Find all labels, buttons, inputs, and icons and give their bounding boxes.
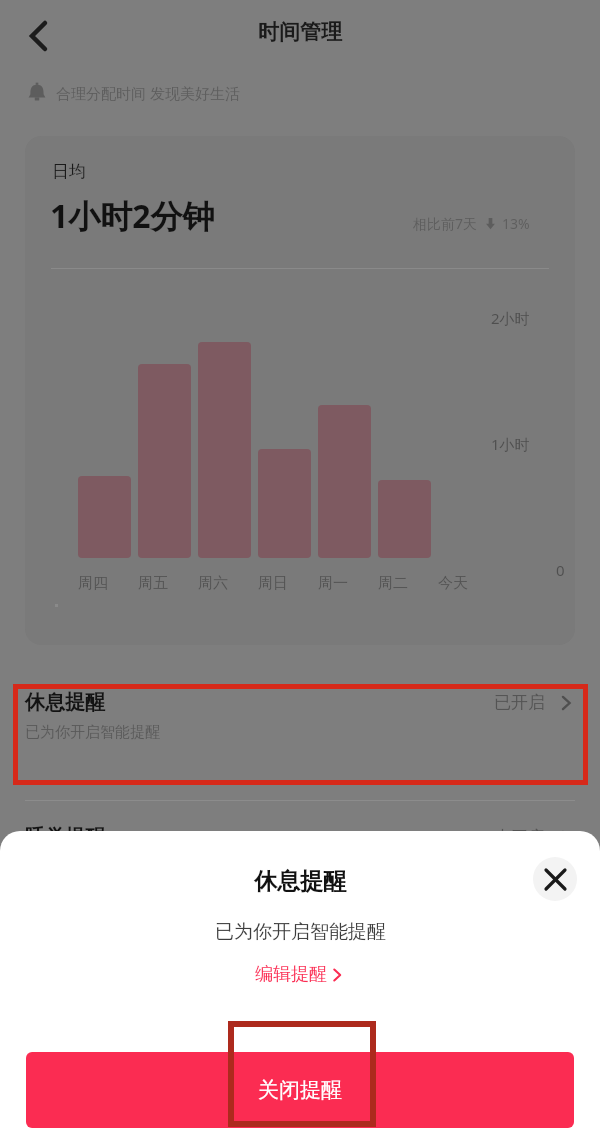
- staticText: 日均: [52, 161, 86, 182]
- button[interactable]: 睡觉提醒: [25, 825, 575, 850]
- staticText: 相比前7天: [413, 214, 478, 233]
- staticText: 未开启: [494, 827, 545, 848]
- staticText: 已开启: [494, 692, 545, 713]
- button[interactable]: 休息提醒: [25, 690, 575, 742]
- button[interactable]: 关闭提醒: [26, 1052, 574, 1128]
- staticText: 关闭提醒: [258, 1077, 342, 1103]
- staticText: 编辑提醒: [255, 963, 327, 986]
- staticText: 周二: [378, 574, 408, 593]
- button[interactable]: 编辑提醒: [255, 963, 345, 986]
- staticText: 已为你开启智能提醒: [25, 723, 160, 742]
- staticText: 睡觉提醒: [25, 825, 494, 850]
- staticText: 周日: [258, 574, 288, 593]
- staticText: 休息提醒: [254, 867, 346, 896]
- staticText: 周四: [78, 574, 108, 593]
- button[interactable]: Back: [12, 10, 64, 62]
- staticText: 1小时: [491, 434, 530, 454]
- staticText: 0: [556, 560, 565, 580]
- staticText: 合理分配时间 发现美好生活: [56, 83, 240, 103]
- staticText: 周一: [318, 574, 348, 593]
- staticText: 周五: [138, 574, 168, 593]
- button[interactable]: Close: [533, 857, 577, 901]
- staticText: 时间管理: [0, 19, 600, 45]
- staticText: 今天: [438, 574, 468, 593]
- staticText: 2小时: [491, 308, 530, 328]
- staticText: 13%: [502, 214, 530, 233]
- staticText: 休息提醒: [25, 690, 494, 715]
- staticText: 已为你开启智能提醒: [215, 920, 386, 944]
- staticText: 1小时2分钟: [50, 194, 215, 238]
- staticText: 周六: [198, 574, 228, 593]
